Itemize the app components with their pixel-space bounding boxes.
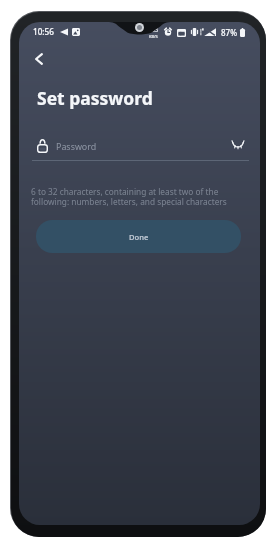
button[interactable]: Done: [36, 220, 241, 253]
staticText: KB/S: [149, 34, 158, 38]
staticText: 165: [148, 26, 159, 34]
staticText: 87%: [221, 27, 237, 38]
staticText: Done: [129, 232, 149, 242]
staticText: 10:56: [33, 26, 54, 37]
staticText: Set password: [37, 86, 153, 110]
button[interactable]: Show password: [225, 132, 251, 158]
button[interactable]: Password input: [32, 132, 222, 161]
button[interactable]: Back: [26, 46, 52, 72]
staticText: 6 to 32 characters, containing at least …: [31, 186, 227, 207]
staticText: Password: [56, 140, 97, 152]
